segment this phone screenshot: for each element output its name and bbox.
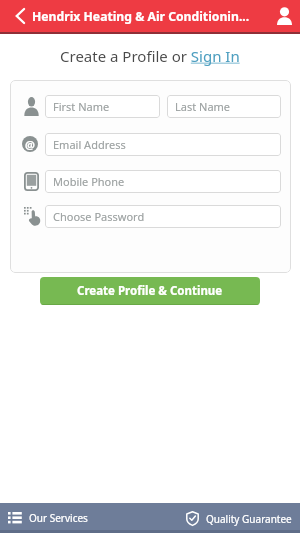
staticText: First Name bbox=[53, 99, 110, 114]
button[interactable]: First Name bbox=[45, 95, 160, 118]
staticText: Create Profile & Continue bbox=[77, 283, 223, 299]
button[interactable]: Quality Guarantee bbox=[186, 511, 292, 526]
staticText: Quality Guarantee bbox=[206, 512, 292, 526]
staticText: Last Name bbox=[175, 99, 231, 114]
button[interactable]: Email Address bbox=[45, 133, 281, 156]
button[interactable] bbox=[268, 0, 300, 32]
staticText: Mobile Phone bbox=[53, 174, 125, 189]
button[interactable] bbox=[0, 0, 36, 32]
button[interactable]: Our Services bbox=[8, 511, 88, 525]
staticText: Our Services bbox=[29, 511, 88, 525]
button[interactable]: Choose Password bbox=[45, 205, 281, 228]
staticText: @ bbox=[25, 137, 35, 152]
button[interactable]: Create a Profile or Sign In bbox=[60, 46, 240, 66]
staticText: Hendrix Heating & Air Conditionin... bbox=[32, 8, 250, 25]
button[interactable]: Create Profile & Continue bbox=[40, 277, 260, 305]
staticText: Email Address bbox=[53, 137, 126, 152]
button[interactable]: Last Name bbox=[167, 95, 281, 118]
staticText: Choose Password bbox=[53, 209, 145, 224]
button[interactable]: Mobile Phone bbox=[45, 170, 281, 193]
